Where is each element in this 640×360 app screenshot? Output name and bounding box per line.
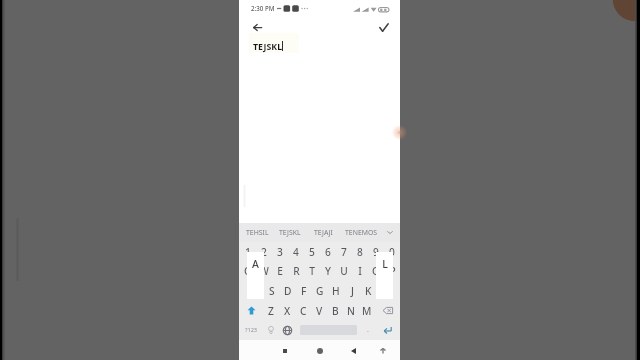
button[interactable]: 7 (336, 242, 352, 261)
staticText: 8 (357, 245, 363, 259)
staticText: S (269, 284, 275, 298)
staticText: V (316, 304, 323, 318)
staticText: I (358, 264, 362, 278)
staticText: 2 (261, 245, 267, 259)
staticText: M (362, 304, 372, 318)
button[interactable]: Z (263, 301, 279, 320)
button[interactable]: O (368, 261, 384, 281)
button[interactable]: Recents (277, 343, 293, 359)
button[interactable]: Done (374, 17, 394, 37)
button[interactable]: 6 (320, 242, 336, 261)
staticText: O (372, 264, 380, 278)
staticText: J (351, 284, 354, 298)
button[interactable]: R (288, 261, 304, 281)
staticText: Z (268, 304, 274, 318)
staticText: TEJSKL (253, 41, 283, 53)
staticText: X (284, 304, 291, 318)
staticText: C (300, 304, 307, 318)
staticText: P (389, 264, 396, 278)
button[interactable]: Change language (279, 320, 295, 340)
staticText: T (309, 264, 315, 278)
staticText: 0 (389, 245, 395, 259)
staticText: N (347, 304, 355, 318)
button[interactable]: E (272, 261, 288, 281)
button[interactable]: S (264, 281, 280, 301)
button[interactable]: TEHSIL (239, 223, 275, 242)
staticText: Q (244, 264, 252, 278)
button[interactable]: J (344, 281, 360, 301)
button[interactable]: 2 (256, 242, 272, 261)
button[interactable]: Back (345, 343, 361, 359)
staticText: 4 (293, 245, 299, 259)
button[interactable]: Backspace (375, 301, 400, 320)
button[interactable]: C (295, 301, 311, 320)
staticText: A (252, 257, 259, 271)
button[interactable]: TENEMOS (343, 223, 379, 242)
staticText: TEJSKL (279, 228, 301, 237)
staticText: 6 (325, 245, 331, 259)
staticText: 9 (373, 245, 379, 259)
staticText: D (284, 284, 292, 298)
button[interactable]: 4 (288, 242, 304, 261)
button[interactable]: A (247, 281, 264, 301)
button[interactable]: 9 (368, 242, 384, 261)
button[interactable]: H (328, 281, 344, 301)
button[interactable]: D (280, 281, 296, 301)
button[interactable]: T (304, 261, 320, 281)
button[interactable]: 8 (352, 242, 368, 261)
button[interactable]: W (256, 261, 272, 281)
staticText: G (316, 284, 324, 298)
button[interactable]: 3 (272, 242, 288, 261)
button[interactable]: TEJSKL (272, 223, 308, 242)
button[interactable]: Enter (377, 320, 397, 340)
button[interactable]: Expand suggestions (379, 223, 400, 242)
button[interactable]: Emoji (263, 320, 279, 340)
staticText: B (332, 304, 339, 318)
staticText: W (259, 264, 269, 278)
button[interactable]: Home (312, 343, 328, 359)
button[interactable]: ?123 (239, 320, 263, 340)
staticText: TEHSIL (246, 228, 269, 237)
button[interactable]: V (311, 301, 327, 320)
button[interactable]: Y (320, 261, 336, 281)
staticText: TENEMOS (345, 228, 378, 237)
button[interactable]: L (376, 281, 392, 301)
staticText: R (293, 264, 300, 278)
staticText: TEJAJI (314, 228, 333, 237)
button[interactable]: F (296, 281, 312, 301)
button[interactable]: G (312, 281, 328, 301)
button[interactable]: Shift (239, 301, 263, 320)
button[interactable]: X (279, 301, 295, 320)
button[interactable]: K (360, 281, 376, 301)
button[interactable]: 5 (304, 242, 320, 261)
button[interactable]: U (336, 261, 352, 281)
button[interactable]: I (352, 261, 368, 281)
button[interactable]: P (384, 261, 400, 281)
button[interactable]: B (327, 301, 343, 320)
staticText: ?123 (245, 326, 258, 334)
staticText: 2:30 PM (251, 4, 275, 12)
button[interactable]: Q (239, 261, 256, 281)
staticText: 5 (309, 245, 315, 259)
button[interactable]: N (343, 301, 359, 320)
staticText: F (301, 284, 307, 298)
button[interactable]: M (359, 301, 375, 320)
staticText: L (382, 257, 388, 271)
staticText: K (365, 284, 372, 298)
button[interactable]: Back (247, 17, 267, 37)
staticText: . (367, 325, 369, 335)
staticText: H (332, 284, 340, 298)
staticText: U (340, 264, 348, 278)
button[interactable]: 1 (239, 242, 256, 261)
staticText: 3 (277, 245, 283, 259)
staticText: 1 (245, 245, 251, 259)
staticText: 7 (341, 245, 347, 259)
button[interactable]: Hide keyboard (375, 343, 391, 359)
button[interactable]: TEJAJI (305, 223, 341, 242)
staticText: E (277, 264, 283, 278)
button[interactable]: 0 (384, 242, 400, 261)
